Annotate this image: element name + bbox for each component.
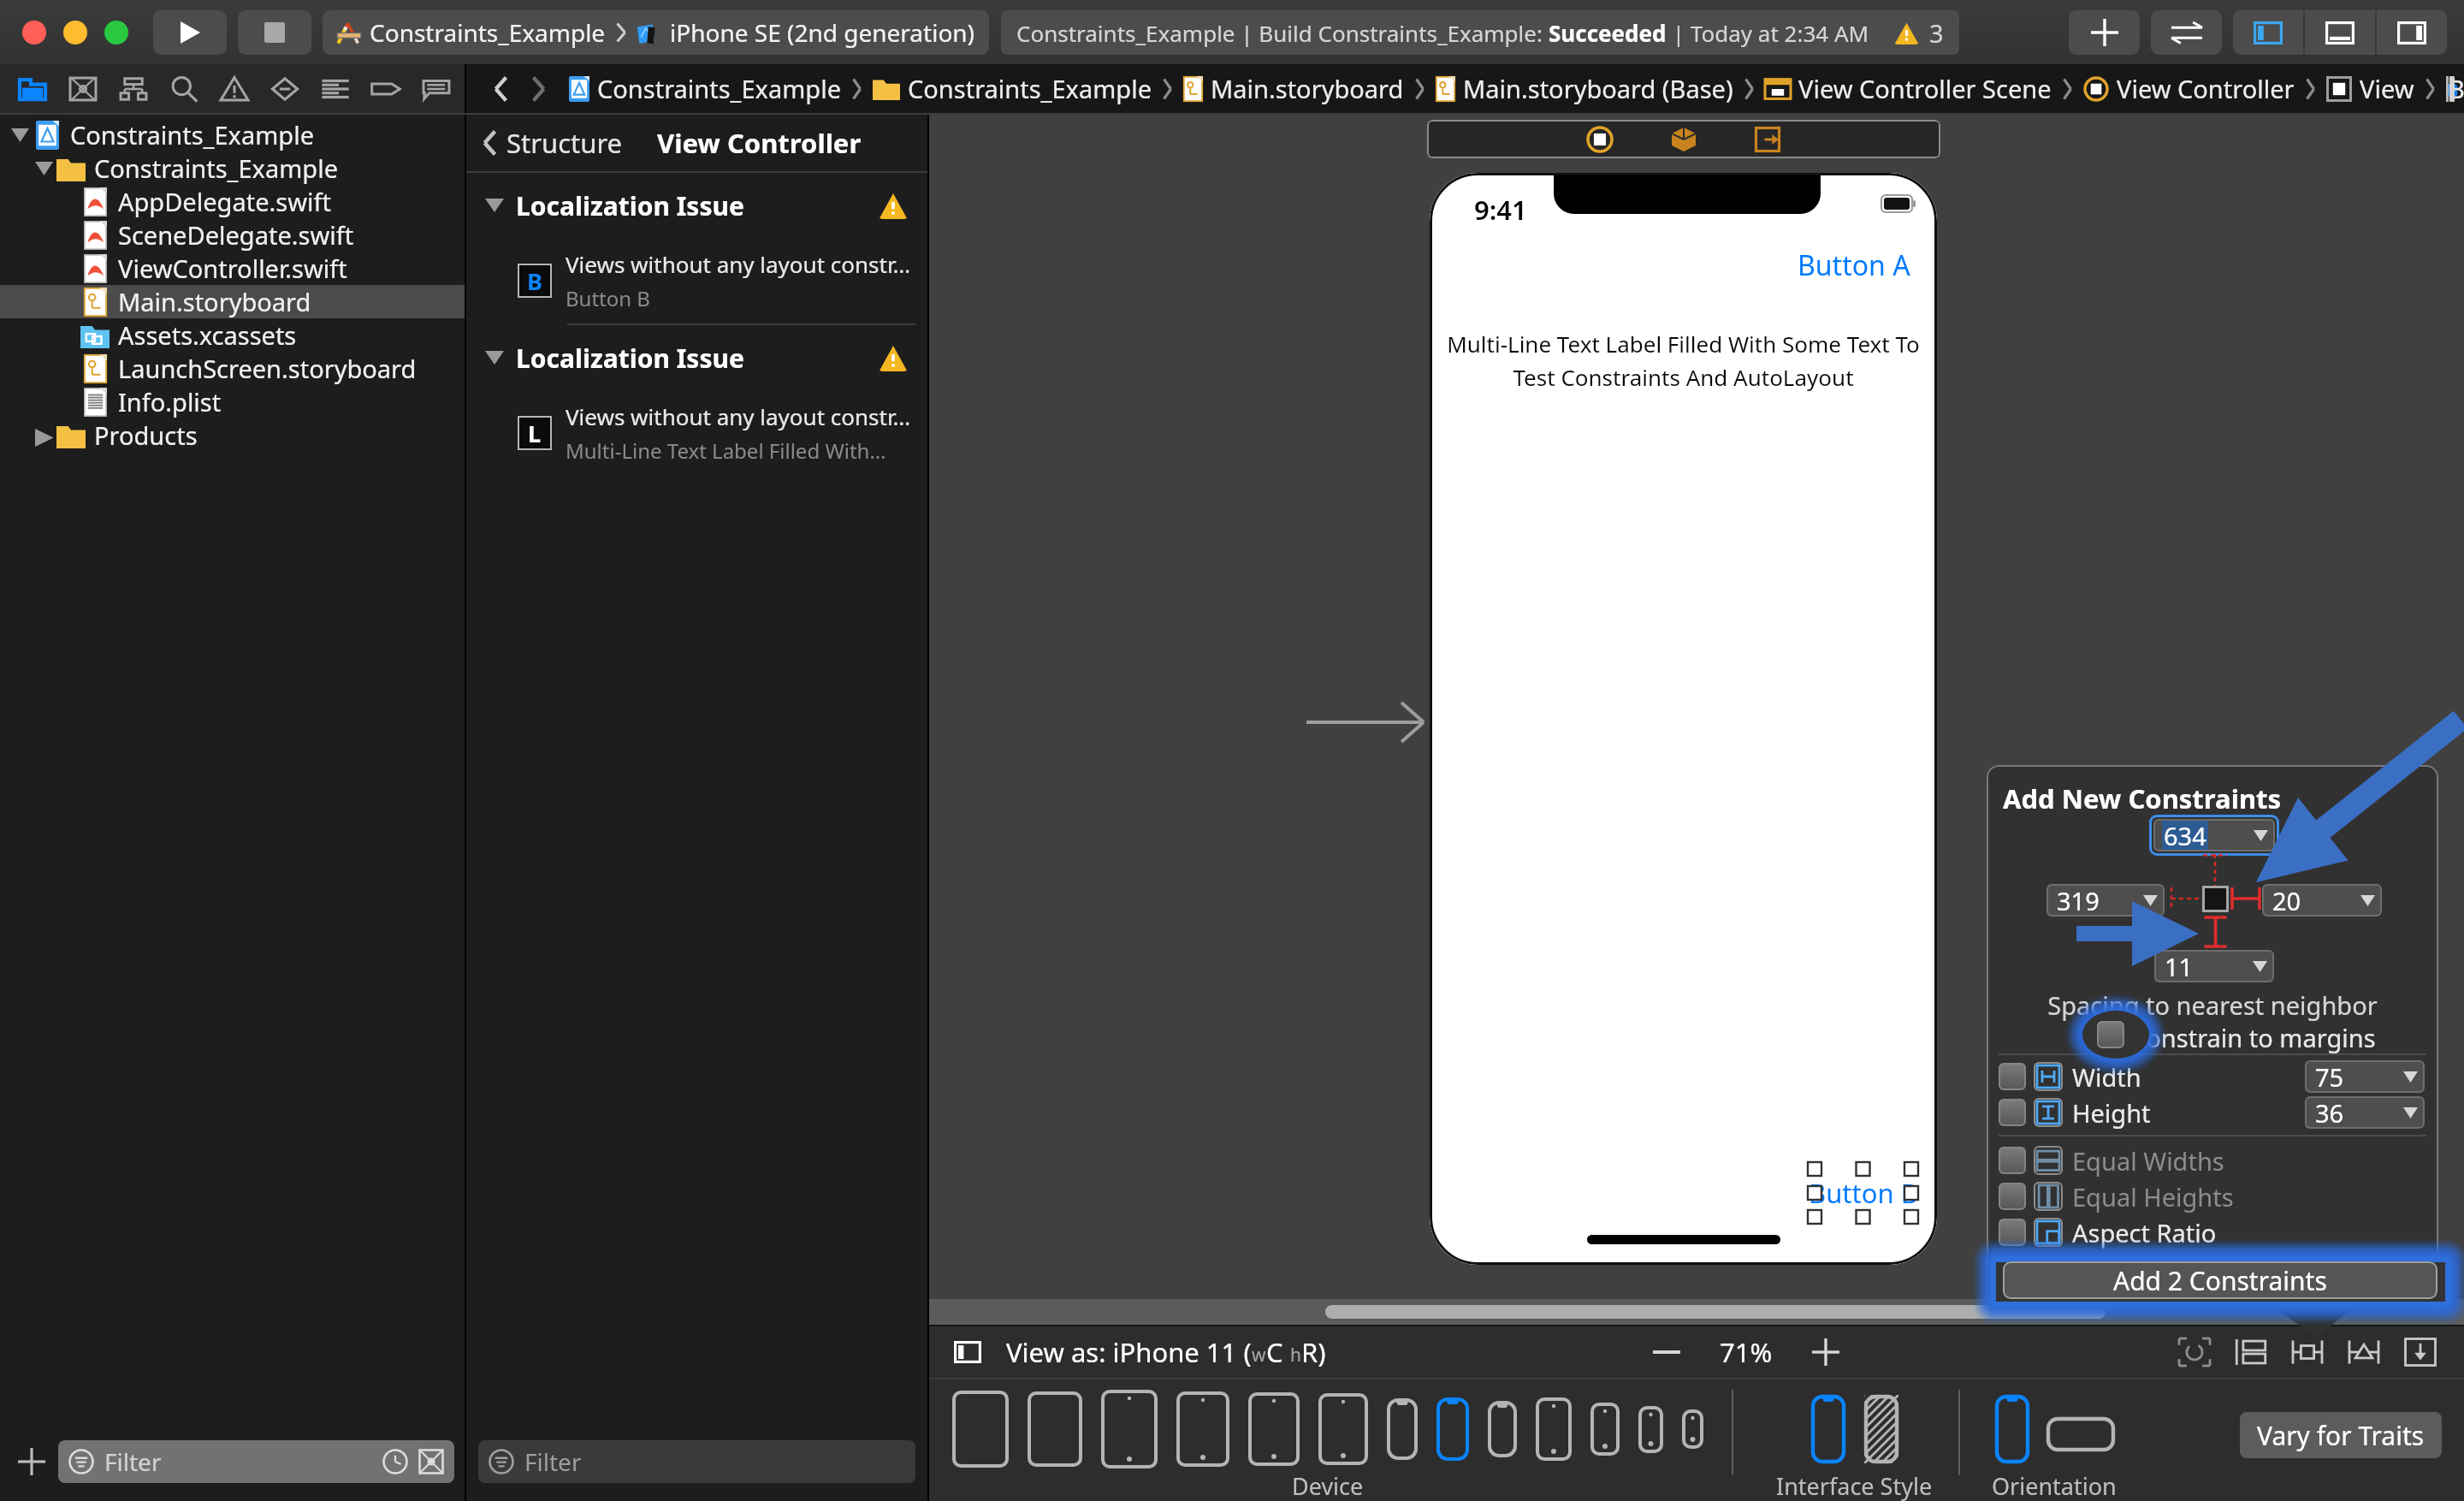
button[interactable]: Main.storyboard (0, 285, 465, 318)
button[interactable]: Zoom out (1639, 1326, 1694, 1378)
button[interactable]: Device preset (1478, 1390, 1526, 1468)
button[interactable]: Constraints_Example (0, 151, 465, 185)
button[interactable]: Window control (104, 21, 128, 44)
button[interactable]: Localization Issue (466, 325, 927, 390)
button[interactable]: Dark appearance (1855, 1390, 1908, 1468)
button[interactable]: Device preset (1629, 1390, 1673, 1468)
button[interactable]: Toggle editor mode (2151, 10, 2222, 55)
button[interactable]: Device preset (1581, 1390, 1629, 1468)
button[interactable]: Forward (519, 70, 557, 108)
button[interactable]: Add 2 Constraints (2003, 1261, 2437, 1299)
button[interactable]: Device preset (1239, 1390, 1309, 1468)
button[interactable]: Equal Heights (1987, 1178, 2438, 1214)
staticText: Add New Constraints (2003, 780, 2282, 816)
button[interactable]: Add (2069, 10, 2140, 55)
button[interactable]: SceneDelegate.swift (0, 218, 465, 252)
button[interactable]: Device preset (1427, 1390, 1478, 1468)
button[interactable]: Hide inspector (2377, 10, 2447, 55)
button[interactable]: Portrait orientation (1986, 1390, 2039, 1468)
button[interactable]: Aspect Ratio (1987, 1214, 2438, 1250)
button[interactable]: Device preset (943, 1390, 1018, 1468)
staticText: Main.storyboard (118, 285, 311, 318)
button[interactable]: Constraints_Example (323, 10, 989, 55)
button[interactable]: Equal Widths (1987, 1142, 2438, 1178)
staticText: Main.storyboard (1211, 72, 1404, 105)
button[interactable]: ViewController.swift (0, 252, 465, 285)
button[interactable]: Constraints_Example (869, 72, 1155, 105)
button[interactable]: View (2323, 72, 2418, 105)
button[interactable]: Zoom in (1798, 1326, 1853, 1378)
button[interactable]: Navigator tab 5 (209, 65, 259, 112)
button[interactable]: 634 (2153, 819, 2275, 851)
staticText: SceneDelegate.swift (118, 218, 354, 252)
button[interactable]: Navigator tab 3 (108, 65, 158, 112)
button[interactable]: Main.storyboard (1180, 72, 1407, 105)
button[interactable]: Navigator tab 8 (360, 65, 411, 112)
button[interactable]: Navigator tab 1 (7, 65, 57, 112)
button[interactable]: Filter (58, 1440, 454, 1483)
button[interactable]: Device preset (1377, 1390, 1427, 1468)
button[interactable]: Constraints_Example (566, 72, 844, 105)
button[interactable]: Add file (9, 1439, 55, 1485)
button[interactable]: 319 (2046, 884, 2165, 917)
button[interactable]: Stop (238, 10, 311, 55)
button[interactable]: Editor tool 3 (2279, 1326, 2336, 1378)
button[interactable]: Navigator tab 4 (158, 65, 209, 112)
button[interactable]: Button B (1809, 1175, 1918, 1211)
button[interactable]: Constrain to margins (1987, 1020, 2438, 1054)
button[interactable]: Hide debug area (2305, 10, 2375, 55)
button[interactable]: Light appearance (1802, 1390, 1855, 1468)
button[interactable]: Window control (63, 21, 87, 44)
button[interactable]: Filter (478, 1440, 915, 1483)
button[interactable]: View Controller object (1576, 120, 1624, 158)
button[interactable]: 75 (2305, 1060, 2425, 1093)
button[interactable]: First Responder object (1660, 120, 1708, 158)
button[interactable]: Navigator tab 7 (310, 65, 360, 112)
button[interactable]: Hide navigator (2233, 10, 2303, 55)
button[interactable]: AppDelegate.swift (0, 185, 465, 218)
button[interactable]: Device preset (1673, 1390, 1713, 1468)
button[interactable]: Device configuration (948, 1332, 987, 1372)
button[interactable]: Device preset (1018, 1390, 1092, 1468)
button[interactable]: Device preset (1309, 1390, 1377, 1468)
button[interactable]: Exit object (1744, 120, 1792, 158)
staticText: B (527, 265, 542, 297)
button[interactable]: Navigator tab 6 (259, 65, 310, 112)
button[interactable]: Height (1987, 1095, 2438, 1130)
button[interactable]: 36 (2305, 1096, 2425, 1129)
staticText: Interface Style (1776, 1470, 1933, 1501)
button[interactable]: Device preset (1526, 1390, 1581, 1468)
button[interactable]: Device preset (1167, 1390, 1239, 1468)
button[interactable]: Window control (22, 21, 46, 44)
button[interactable]: Width (1987, 1059, 2438, 1095)
button[interactable]: Constraints_Example (0, 118, 465, 151)
button[interactable]: View Controller (2080, 72, 2298, 105)
button[interactable]: Navigator tab 9 (411, 65, 461, 112)
button[interactable]: Vary for Traits (2240, 1412, 2442, 1458)
button[interactable]: L (466, 390, 927, 476)
button[interactable]: Editor tool 2 (2223, 1326, 2279, 1378)
button[interactable]: Products (0, 418, 465, 452)
button[interactable]: B (466, 238, 927, 323)
button[interactable]: Landscape orientation (2039, 1390, 2123, 1468)
button[interactable]: Editor tool 1 (2166, 1326, 2223, 1378)
button[interactable]: Editor tool 4 (2336, 1326, 2392, 1378)
staticText: | Today at 2:34 AM (1667, 18, 1869, 48)
staticText: Button A (1798, 246, 1910, 284)
button[interactable]: Button A (1772, 246, 1910, 285)
button[interactable]: Device preset (1092, 1390, 1167, 1468)
button[interactable]: View Controller Scene (1762, 72, 2055, 105)
button[interactable]: B (2443, 72, 2452, 105)
button[interactable]: Main.storyboard (Base) (1432, 72, 1737, 105)
button[interactable]: Localization Issue (466, 173, 927, 238)
button[interactable]: Editor tool 5 (2392, 1326, 2449, 1378)
button[interactable]: LaunchScreen.storyboard (0, 352, 465, 385)
button[interactable]: Info.plist (0, 385, 465, 418)
button[interactable]: Assets.xcassets (0, 318, 465, 352)
button[interactable]: Navigator tab 2 (57, 65, 108, 112)
button[interactable]: 20 (2262, 884, 2382, 917)
button[interactable]: Structure (466, 115, 927, 171)
button[interactable]: Back (482, 70, 519, 108)
button[interactable]: 11 (2154, 950, 2274, 982)
button[interactable]: Run (153, 10, 227, 55)
